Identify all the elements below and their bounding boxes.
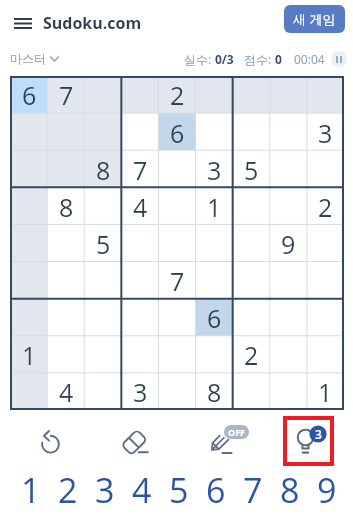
button[interactable]: 3 bbox=[307, 114, 344, 151]
button[interactable]: Pause bbox=[331, 51, 347, 67]
button[interactable] bbox=[10, 188, 48, 225]
button[interactable]: Hint bbox=[287, 420, 330, 462]
button[interactable] bbox=[196, 114, 233, 151]
button[interactable]: 7 bbox=[159, 262, 196, 299]
button[interactable]: 8 bbox=[48, 188, 85, 225]
button[interactable]: 4 bbox=[122, 188, 159, 225]
button[interactable] bbox=[233, 262, 270, 299]
button[interactable]: 2 bbox=[307, 188, 344, 225]
button[interactable]: 6 bbox=[159, 114, 196, 151]
button[interactable] bbox=[48, 299, 85, 336]
button[interactable] bbox=[48, 151, 85, 188]
button[interactable] bbox=[270, 76, 307, 114]
button[interactable] bbox=[233, 114, 270, 151]
button[interactable]: 6 bbox=[197, 467, 234, 512]
button[interactable]: 6 bbox=[196, 299, 233, 336]
button[interactable]: 5 bbox=[233, 151, 270, 188]
button[interactable]: 4 bbox=[48, 373, 85, 410]
button[interactable]: 6 bbox=[10, 76, 48, 114]
button[interactable]: 2 bbox=[49, 467, 86, 512]
button[interactable] bbox=[233, 373, 270, 410]
button[interactable] bbox=[233, 299, 270, 336]
button[interactable] bbox=[10, 262, 48, 299]
button[interactable]: 2 bbox=[233, 336, 270, 373]
button[interactable]: 4 bbox=[123, 467, 160, 512]
button[interactable] bbox=[122, 225, 159, 262]
button[interactable] bbox=[307, 336, 344, 373]
button[interactable] bbox=[307, 225, 344, 262]
button[interactable]: 새 게임 bbox=[284, 5, 345, 33]
button[interactable] bbox=[85, 373, 122, 410]
button[interactable] bbox=[159, 188, 196, 225]
button[interactable]: 1 bbox=[196, 188, 233, 225]
button[interactable] bbox=[307, 262, 344, 299]
button[interactable] bbox=[85, 299, 122, 336]
button[interactable] bbox=[196, 262, 233, 299]
button[interactable]: 7 bbox=[48, 76, 85, 114]
button[interactable] bbox=[10, 299, 48, 336]
button[interactable]: 3 bbox=[122, 373, 159, 410]
button[interactable] bbox=[159, 373, 196, 410]
button[interactable] bbox=[270, 151, 307, 188]
button[interactable] bbox=[270, 336, 307, 373]
button[interactable]: 8 bbox=[85, 151, 122, 188]
button[interactable] bbox=[270, 262, 307, 299]
button[interactable]: 2 bbox=[159, 76, 196, 114]
button[interactable] bbox=[122, 336, 159, 373]
button[interactable]: 1 bbox=[12, 467, 49, 512]
button[interactable]: 5 bbox=[160, 467, 197, 512]
button[interactable] bbox=[196, 336, 233, 373]
button[interactable]: 8 bbox=[271, 467, 308, 512]
button[interactable]: 1 bbox=[10, 336, 48, 373]
staticText: 1 bbox=[318, 375, 333, 409]
button[interactable] bbox=[307, 76, 344, 114]
button[interactable] bbox=[196, 225, 233, 262]
button[interactable] bbox=[85, 188, 122, 225]
button[interactable]: Menu bbox=[6, 9, 39, 38]
button[interactable] bbox=[48, 336, 85, 373]
button[interactable] bbox=[85, 336, 122, 373]
button[interactable] bbox=[10, 114, 48, 151]
button[interactable]: 1 bbox=[307, 373, 344, 410]
button[interactable] bbox=[48, 262, 85, 299]
button[interactable] bbox=[159, 151, 196, 188]
button[interactable] bbox=[270, 299, 307, 336]
button[interactable] bbox=[85, 114, 122, 151]
staticText: 3 bbox=[133, 375, 148, 409]
button[interactable] bbox=[122, 262, 159, 299]
button[interactable] bbox=[233, 188, 270, 225]
button[interactable]: 3 bbox=[86, 467, 123, 512]
button[interactable] bbox=[85, 76, 122, 114]
button[interactable]: Notes bbox=[198, 419, 242, 463]
button[interactable] bbox=[196, 76, 233, 114]
button[interactable]: 9 bbox=[308, 467, 345, 512]
button[interactable] bbox=[122, 76, 159, 114]
button[interactable]: Erase bbox=[112, 419, 156, 463]
button[interactable] bbox=[270, 114, 307, 151]
button[interactable] bbox=[159, 225, 196, 262]
button[interactable] bbox=[10, 151, 48, 188]
button[interactable] bbox=[270, 373, 307, 410]
button[interactable] bbox=[307, 299, 344, 336]
button[interactable] bbox=[10, 225, 48, 262]
button[interactable] bbox=[10, 373, 48, 410]
button[interactable]: 5 bbox=[85, 225, 122, 262]
button[interactable] bbox=[159, 336, 196, 373]
button[interactable] bbox=[159, 299, 196, 336]
button[interactable]: Undo bbox=[28, 419, 72, 463]
button[interactable]: 3 bbox=[196, 151, 233, 188]
button[interactable]: 7 bbox=[122, 151, 159, 188]
button[interactable]: 8 bbox=[196, 373, 233, 410]
button[interactable]: 7 bbox=[234, 467, 271, 512]
button[interactable] bbox=[122, 299, 159, 336]
button[interactable] bbox=[85, 262, 122, 299]
button[interactable] bbox=[307, 151, 344, 188]
button[interactable] bbox=[270, 188, 307, 225]
button[interactable] bbox=[233, 225, 270, 262]
button[interactable] bbox=[122, 114, 159, 151]
button[interactable]: 마스터 bbox=[10, 51, 59, 66]
button[interactable]: 9 bbox=[270, 225, 307, 262]
button[interactable] bbox=[233, 76, 270, 114]
button[interactable] bbox=[48, 225, 85, 262]
